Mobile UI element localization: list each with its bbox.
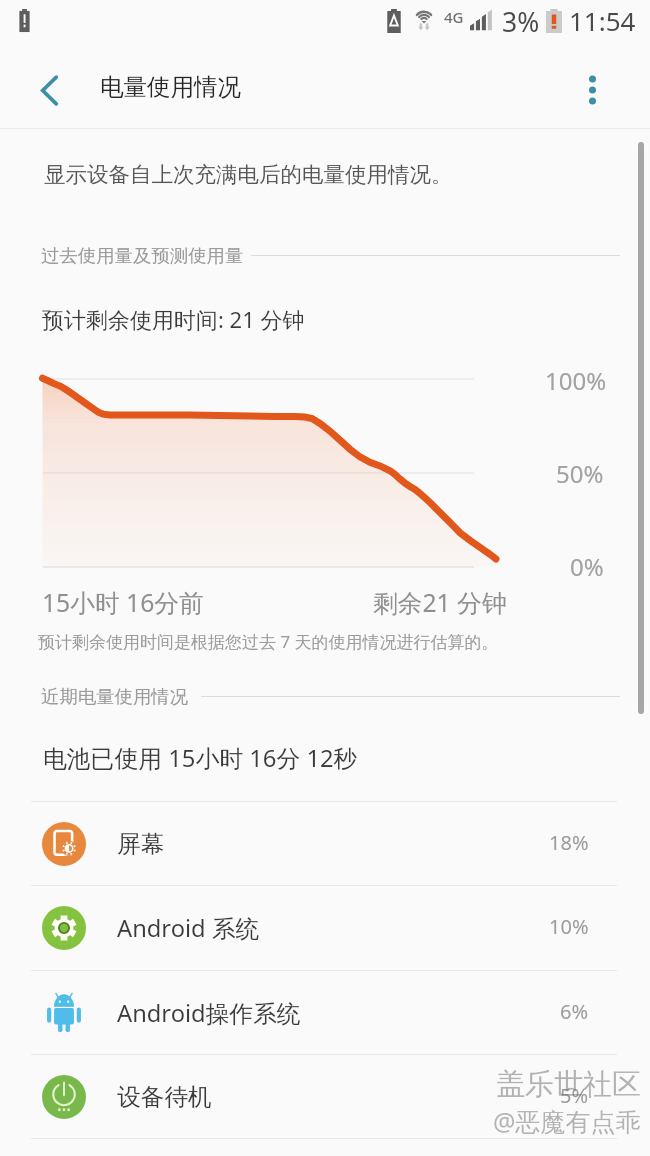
staticText: 近期电量使用情况 xyxy=(41,685,189,708)
staticText: 0% xyxy=(570,550,604,583)
button[interactable]: Android 系统 xyxy=(0,886,650,970)
staticText: 50% xyxy=(556,457,604,490)
button[interactable]: 设备待机 xyxy=(0,1055,650,1139)
staticText: 显示设备自上次充满电后的电量使用情况。 xyxy=(44,161,453,188)
staticText: 过去使用量及预测使用量 xyxy=(41,244,244,267)
staticText: 电量使用情况 xyxy=(100,72,241,102)
button[interactable]: Back xyxy=(11,52,87,128)
staticText: 盖乐世社区 xyxy=(496,1066,641,1103)
staticText: 6% xyxy=(560,998,589,1025)
button[interactable]: Android操作系统 xyxy=(0,971,650,1055)
button[interactable]: 屏幕 xyxy=(0,802,650,886)
staticText: Android操作系统 xyxy=(117,997,301,1029)
staticText: 100% xyxy=(545,364,607,397)
staticText: 电池已使用 15小时 16分 12秒 xyxy=(43,742,358,775)
staticText: 3% xyxy=(502,4,540,40)
staticText: Android 系统 xyxy=(117,912,260,944)
button[interactable]: More options xyxy=(559,52,625,128)
staticText: 18% xyxy=(549,829,589,856)
staticText: 设备待机 xyxy=(117,1082,212,1112)
staticText: 5% xyxy=(560,1082,589,1109)
staticText: 预计剩余使用时间: 21 分钟 xyxy=(42,304,305,334)
staticText: 15小时 16分前 xyxy=(42,586,204,620)
staticText: 预计剩余使用时间是根据您过去 7 天的使用情况进行估算的。 xyxy=(38,630,499,653)
staticText: @恶魔有点乖 xyxy=(493,1104,641,1138)
staticText: 剩余21 分钟 xyxy=(373,586,507,620)
staticText: 11:54 xyxy=(569,3,636,38)
staticText: 10% xyxy=(549,913,589,940)
staticText: 4G xyxy=(444,7,464,27)
staticText: 屏幕 xyxy=(117,829,165,859)
